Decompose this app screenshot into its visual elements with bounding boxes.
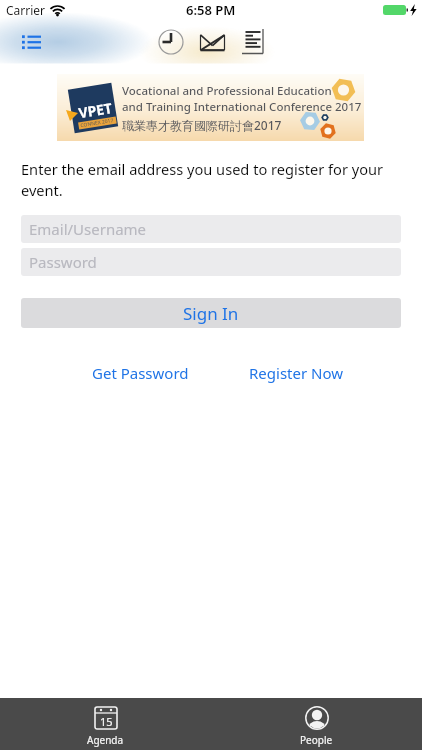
- staticText: Carrier: [6, 2, 46, 18]
- button[interactable]: Email/Username: [21, 215, 401, 243]
- button[interactable]: [234, 20, 272, 64]
- staticText: VPET: [77, 98, 114, 122]
- staticText: Get Password: [92, 363, 189, 383]
- staticText: Vocational and Professional Education: [122, 83, 332, 99]
- button[interactable]: [151, 20, 191, 64]
- staticText: Sign In: [183, 302, 239, 325]
- button[interactable]: [192, 20, 232, 64]
- button[interactable]: People: [211, 698, 422, 750]
- staticText: and Training International Conference 20…: [122, 99, 362, 115]
- staticText: CONNEX 2017: [80, 117, 115, 129]
- staticText: Email/Username: [29, 219, 147, 239]
- staticText: 6:58 PM: [186, 1, 236, 19]
- staticText: People: [300, 733, 333, 747]
- button[interactable]: Password: [21, 248, 401, 276]
- button[interactable]: Sign In: [21, 298, 401, 328]
- button[interactable]: [0, 20, 64, 64]
- staticText: Password: [29, 252, 97, 272]
- staticText: Register Now: [249, 363, 344, 383]
- staticText: 15: [100, 714, 113, 729]
- button[interactable]: Register Now: [249, 363, 344, 383]
- staticText: Agenda: [87, 733, 124, 747]
- button[interactable]: VPET: [57, 74, 364, 141]
- button[interactable]: Get Password: [92, 363, 189, 383]
- staticText: Enter the email address you used to regi…: [21, 159, 384, 201]
- staticText: 職業專才教育國際研討會2017: [122, 117, 282, 133]
- button[interactable]: 15: [0, 698, 211, 750]
